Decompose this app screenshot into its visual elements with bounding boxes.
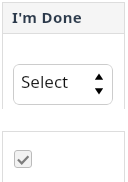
button[interactable]: Done checkbox [14, 150, 32, 168]
button[interactable]: Select [13, 64, 113, 105]
staticText: Select [21, 70, 69, 93]
staticText: I'm Done [12, 7, 83, 27]
